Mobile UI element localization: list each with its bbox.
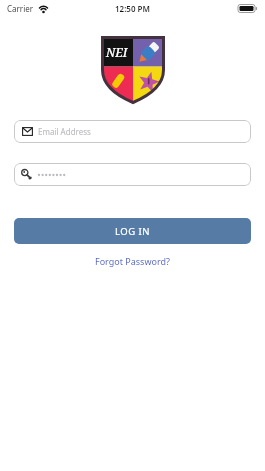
staticText: Email Address — [38, 126, 91, 137]
button[interactable]: Email Address — [14, 120, 251, 143]
staticText: Carrier — [7, 3, 34, 14]
staticText: NEI — [106, 44, 128, 60]
staticText: LOG IN — [115, 225, 151, 238]
button[interactable]: Forgot Password? — [89, 253, 176, 269]
button[interactable]: LOG IN — [14, 218, 251, 244]
button[interactable] — [14, 163, 251, 186]
staticText: Forgot Password? — [95, 255, 170, 267]
staticText: 12:50 PM — [115, 3, 150, 14]
